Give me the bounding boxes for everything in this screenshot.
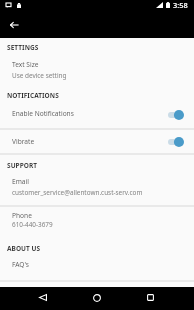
- staticText: 610-440-3679: [12, 220, 53, 229]
- staticText: 3:58: [173, 0, 188, 10]
- staticText: SUPPORT: [7, 161, 38, 170]
- button[interactable]: Enable Notifications: [0, 101, 194, 126]
- staticText: Email: [12, 177, 29, 186]
- staticText: FAQ's: [12, 260, 29, 269]
- staticText: customer_service@allentown.cust-serv.com: [12, 188, 143, 197]
- button[interactable]: Home: [85, 286, 109, 309]
- staticText: Enable Notifications: [12, 109, 168, 118]
- button[interactable]: FAQ's: [0, 260, 194, 275]
- button[interactable]: Text Size: [0, 60, 194, 138]
- staticText: Use device setting: [12, 71, 67, 80]
- staticText: Vibrate: [12, 137, 168, 146]
- button[interactable]: Email: [0, 177, 194, 204]
- staticText: Text Size: [12, 60, 39, 69]
- staticText: Phone: [12, 211, 32, 220]
- button[interactable]: Back: [5, 16, 23, 34]
- button[interactable]: Recent apps: [138, 286, 162, 309]
- button[interactable]: Phone: [0, 211, 194, 234]
- staticText: SETTINGS: [7, 43, 39, 52]
- button[interactable]: Vibrate: [0, 129, 194, 153]
- staticText: ABOUT US: [7, 244, 41, 253]
- button[interactable]: Back: [31, 286, 55, 309]
- staticText: NOTIFICATIONS: [7, 91, 59, 100]
